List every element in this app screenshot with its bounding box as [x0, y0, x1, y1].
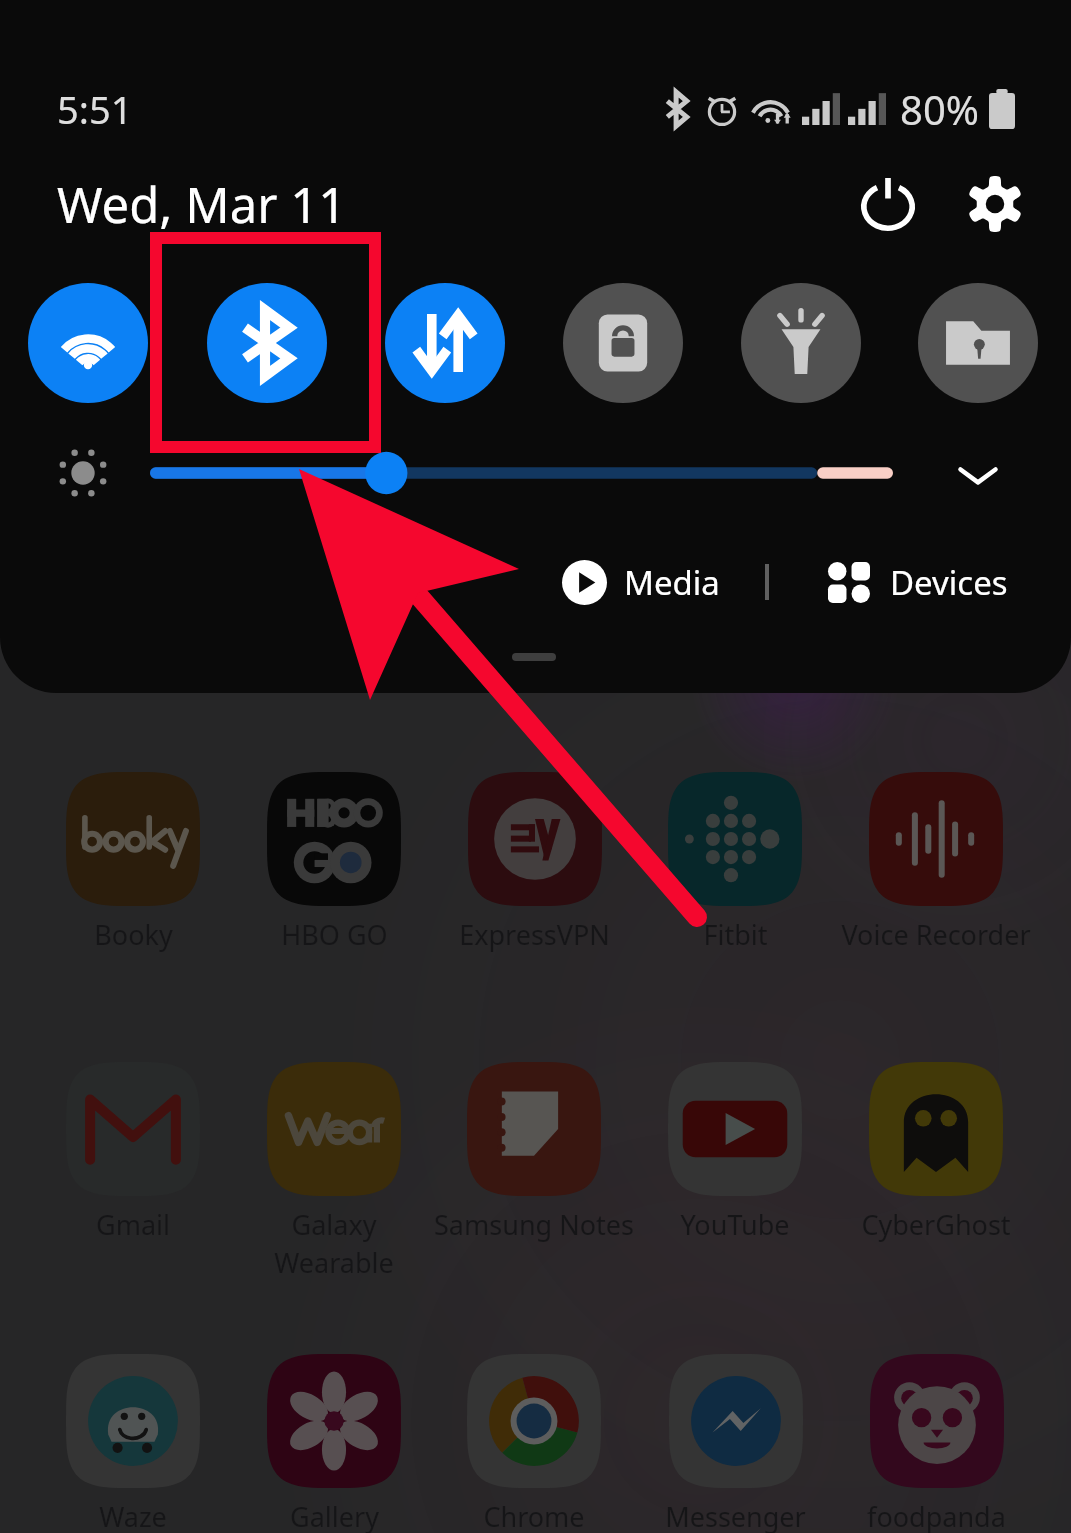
- staticText: Waze: [99, 1498, 167, 1533]
- button[interactable]: Fitbit: [595, 772, 875, 1002]
- staticText: Media: [624, 560, 720, 605]
- button[interactable]: ExpressVPN: [394, 772, 674, 1002]
- staticText: Wed, Mar 11: [57, 171, 347, 238]
- staticText: Samsung Notes: [434, 1206, 634, 1243]
- staticText: Gmail: [96, 1206, 170, 1243]
- button[interactable]: Mobile data: [385, 283, 505, 403]
- button[interactable]: foodpanda: [796, 1354, 1071, 1533]
- staticText: 80%: [900, 82, 979, 136]
- staticText: Voice Recorder: [841, 916, 1031, 953]
- button[interactable]: Devices: [828, 554, 1008, 610]
- button[interactable]: Samsung Notes: [394, 1062, 674, 1292]
- button[interactable]: Messenger: [595, 1354, 875, 1533]
- button[interactable]: Flashlight: [741, 283, 861, 403]
- staticText: 5:51: [57, 83, 133, 135]
- staticText: Booky: [94, 916, 173, 953]
- button[interactable]: Wi-Fi: [28, 283, 148, 403]
- staticText: Messenger: [665, 1498, 806, 1533]
- staticText: Gallery: [290, 1498, 379, 1533]
- button[interactable]: Gallery: [194, 1354, 474, 1533]
- button[interactable]: Waze: [0, 1354, 273, 1533]
- button[interactable]: Expand quick settings: [942, 439, 1014, 511]
- button[interactable]: CyberGhost: [796, 1062, 1071, 1292]
- staticText: foodpanda: [867, 1498, 1006, 1533]
- staticText: CyberGhost: [861, 1206, 1011, 1243]
- button[interactable]: Bluetooth: [207, 283, 327, 403]
- button[interactable]: YouTube: [595, 1062, 875, 1292]
- button[interactable]: Power off: [846, 162, 930, 246]
- staticText: HBO GO: [281, 916, 388, 953]
- button[interactable]: HBO GO: [194, 772, 474, 1002]
- staticText: Fitbit: [703, 916, 768, 953]
- button[interactable]: Gmail: [0, 1062, 273, 1292]
- staticText: Devices: [890, 560, 1008, 605]
- staticText: Chrome: [483, 1498, 585, 1533]
- staticText: Galaxy Wearable: [274, 1206, 394, 1281]
- button[interactable]: Brightness: [150, 450, 893, 496]
- button[interactable]: Booky: [0, 772, 273, 1002]
- staticText: ExpressVPN: [459, 916, 610, 953]
- button[interactable]: Secure Folder: [918, 283, 1038, 403]
- button[interactable]: Settings: [953, 162, 1037, 246]
- button[interactable]: Media: [562, 554, 720, 610]
- button[interactable]: Chrome: [394, 1354, 674, 1533]
- button[interactable]: Galaxy Wearable: [194, 1062, 474, 1292]
- button[interactable]: Auto rotate: [563, 283, 683, 403]
- staticText: YouTube: [680, 1206, 790, 1243]
- button[interactable]: Voice Recorder: [796, 772, 1071, 1002]
